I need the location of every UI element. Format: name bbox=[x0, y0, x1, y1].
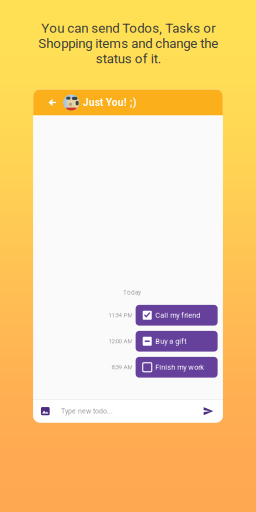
staticText: Finish my work bbox=[155, 363, 204, 372]
button[interactable]: Call my friend bbox=[136, 305, 218, 326]
button[interactable]: Finish my work bbox=[136, 357, 218, 378]
staticText: Call my friend bbox=[155, 311, 200, 320]
staticText: You can send Todos, Tasks or Shopping it… bbox=[38, 20, 218, 66]
staticText: Just You! ;) bbox=[83, 97, 137, 108]
button[interactable]: Back bbox=[41, 89, 63, 115]
button[interactable]: Buy a gift bbox=[136, 331, 218, 352]
button[interactable]: Type new todo... bbox=[33, 400, 223, 422]
staticText: Today bbox=[123, 289, 141, 296]
staticText: 8:39 AM bbox=[111, 364, 132, 371]
staticText: Buy a gift bbox=[155, 337, 186, 346]
staticText: 11:34 PM bbox=[108, 312, 132, 319]
staticText: 12:00 AM bbox=[108, 338, 132, 345]
staticText: Type new todo... bbox=[61, 407, 113, 415]
